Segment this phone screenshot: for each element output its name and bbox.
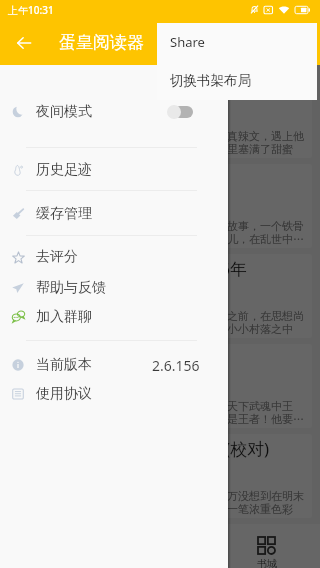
staticText: 切换书架布局: [170, 72, 251, 89]
staticText: 杨凌睁开了他的眼睛，万万没想到在明末乱世，他要在历史上留下一笔浓重色彩: [106, 489, 306, 516]
staticText: 帮助与反馈: [36, 279, 106, 297]
staticText: 当前版本: [36, 356, 92, 374]
staticText: 历史足迹: [36, 161, 92, 179]
staticText: 加入群聊: [36, 308, 92, 326]
staticText: 斗罗大陆: [106, 347, 174, 368]
button[interactable]: 斗罗大陆: [8, 344, 312, 428]
staticText: 唐门外门弟子唐三，乃是天下武魂中王者！纵使不死，穿越依旧是王者！他要证明: [106, 399, 306, 426]
staticText: 上午10:31: [8, 3, 54, 17]
button[interactable]: Share: [157, 23, 317, 60]
button[interactable]: 缓存管理: [0, 199, 228, 229]
button[interactable]: 大明之崛起1646年: [8, 254, 312, 338]
button[interactable]: Back: [9, 28, 38, 57]
staticText: 书城: [257, 557, 277, 568]
staticText: 缓存管理: [36, 205, 92, 223]
button[interactable]: 去评分: [0, 242, 228, 272]
button[interactable]: 回到明朝当王爷(校对): [8, 434, 312, 518]
staticText: 去评分: [36, 248, 78, 266]
staticText: 公元一六四六年大明崇祯之前，在思想尚且开化，科技尚未发达的小小村落之中: [106, 309, 306, 336]
button[interactable]: 书城: [213, 524, 320, 568]
button[interactable]: 使用协议: [0, 380, 228, 407]
staticText: 回到明朝当王爷(校对): [106, 437, 270, 460]
button[interactable]: 帮助与反馈: [0, 272, 228, 303]
button[interactable]: 加入群聊: [0, 303, 228, 330]
button[interactable]: 当前版本: [0, 350, 228, 380]
staticText: 夜间模式: [36, 103, 92, 121]
staticText: 使用协议: [36, 385, 92, 403]
button[interactable]: 历史足迹: [0, 155, 228, 185]
staticText: 蛋皇阅读器: [59, 32, 144, 53]
button[interactable]: 龙血战神: [8, 164, 312, 248]
staticText: 2.6.156: [152, 356, 200, 375]
button[interactable]: 重生之女神归来: [8, 74, 312, 158]
button[interactable]: 夜间模式: [0, 97, 228, 127]
staticText: 大明之崛起1646年: [106, 257, 247, 280]
button[interactable]: 切换书架布局: [157, 60, 317, 100]
staticText: 重生之女神归来: [106, 77, 225, 98]
staticText: 一篇甜中带点小虐的非常真辣文，遇上他才知道原来爱情自在肚子里塞满了甜蜜: [106, 129, 306, 156]
staticText: Share: [170, 33, 205, 51]
staticText: 这是一个热血沸腾的传奇故事，一个铁骨铮铮、顶天立地的七尺男儿，在乱世中崛起: [106, 219, 306, 246]
